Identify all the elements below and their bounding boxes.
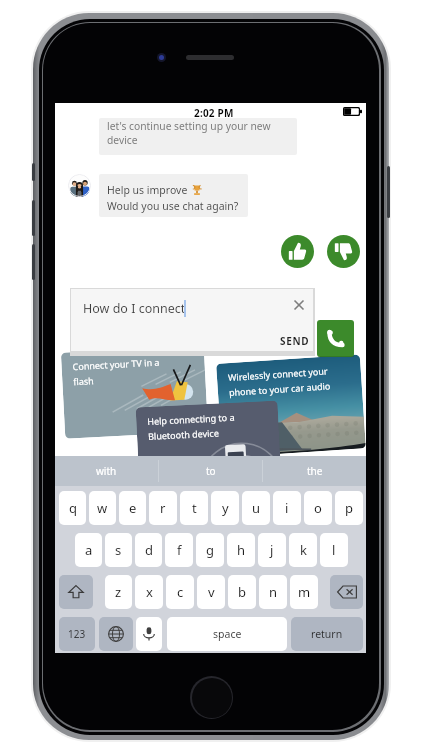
button[interactable]: Wirelessly connect your phone to your ca… xyxy=(216,354,366,458)
button[interactable]: k xyxy=(289,533,317,567)
button[interactable]: u xyxy=(242,491,270,525)
staticText: Help us improve xyxy=(107,183,188,197)
button[interactable]: e xyxy=(119,491,146,525)
button[interactable]: to xyxy=(159,456,262,486)
staticText: y xyxy=(222,499,229,517)
staticText: 123 xyxy=(68,627,86,641)
button[interactable]: p xyxy=(335,491,363,525)
staticText: Would you use chat again? xyxy=(107,199,239,213)
staticText: t xyxy=(192,499,197,517)
button[interactable]: t xyxy=(180,491,208,525)
button[interactable]: r xyxy=(149,491,177,525)
staticText: Help connecting to a Bluetooth device xyxy=(147,411,236,442)
button[interactable]: Switch language xyxy=(99,617,133,651)
staticText: q xyxy=(69,499,77,517)
button[interactable]: return xyxy=(291,617,363,651)
button[interactable]: w xyxy=(89,491,116,525)
staticText: h xyxy=(237,541,246,559)
staticText: i xyxy=(285,499,289,517)
button[interactable]: d xyxy=(135,533,162,567)
button[interactable]: c xyxy=(166,575,194,609)
button[interactable]: x xyxy=(135,575,163,609)
button[interactable]: 123 xyxy=(59,617,95,651)
staticText: 2:02 PM xyxy=(194,106,234,120)
staticText: u xyxy=(252,499,261,517)
button[interactable]: let's continue setting up your new devic… xyxy=(99,118,297,155)
staticText: w xyxy=(97,499,108,517)
staticText: the xyxy=(307,464,323,478)
staticText: b xyxy=(238,583,246,601)
staticText: Connect your TV in a flash xyxy=(72,356,161,387)
staticText: z xyxy=(115,583,122,601)
staticText: x xyxy=(146,583,153,601)
staticText: s xyxy=(115,541,122,559)
button[interactable]: h xyxy=(227,533,255,567)
staticText: r xyxy=(160,499,166,517)
button[interactable]: Call xyxy=(317,320,354,357)
button[interactable]: y xyxy=(211,491,239,525)
staticText: Wirelessly connect your phone to your ca… xyxy=(227,364,331,398)
staticText: j xyxy=(270,541,274,559)
staticText: m xyxy=(298,583,311,601)
button[interactable]: space xyxy=(167,617,287,651)
button[interactable]: q xyxy=(59,491,86,525)
button[interactable]: g xyxy=(196,533,224,567)
button[interactable]: Close xyxy=(291,297,307,313)
button[interactable]: b xyxy=(228,575,256,609)
button[interactable]: l xyxy=(320,533,348,567)
staticText: let's continue setting up your new devic… xyxy=(107,119,271,147)
staticText: return xyxy=(311,627,343,641)
button[interactable]: Shift xyxy=(59,575,93,609)
staticText: SEND xyxy=(280,334,310,348)
button[interactable]: o xyxy=(304,491,332,525)
button[interactable]: a xyxy=(75,533,102,567)
staticText: o xyxy=(314,499,322,517)
button[interactable]: Thumbs up xyxy=(281,235,314,268)
button[interactable]: Help connecting to a Bluetooth device xyxy=(136,400,280,467)
staticText: v xyxy=(208,583,215,601)
button[interactable]: j xyxy=(258,533,286,567)
button[interactable]: z xyxy=(105,575,132,609)
button[interactable]: f xyxy=(165,533,193,567)
button[interactable]: m xyxy=(290,575,318,609)
staticText: to xyxy=(206,464,216,478)
staticText: g xyxy=(206,541,214,559)
staticText: f xyxy=(177,541,182,559)
staticText: k xyxy=(300,541,307,559)
button[interactable]: Help us improve xyxy=(99,174,248,217)
staticText: d xyxy=(145,541,153,559)
button[interactable]: the xyxy=(263,456,366,486)
staticText: n xyxy=(269,583,278,601)
staticText: space xyxy=(213,627,242,641)
staticText: e xyxy=(129,499,137,517)
button[interactable]: SEND xyxy=(280,334,310,348)
staticText: p xyxy=(345,499,353,517)
button[interactable]: s xyxy=(105,533,132,567)
staticText: c xyxy=(177,583,184,601)
button[interactable]: Connect your TV in a flash xyxy=(61,345,208,439)
button[interactable]: Dictate xyxy=(136,617,162,651)
button[interactable]: Backspace xyxy=(330,575,363,609)
button[interactable]: with xyxy=(55,456,158,486)
staticText: a xyxy=(85,541,93,559)
staticText: l xyxy=(332,541,336,559)
staticText: with xyxy=(96,464,117,478)
button[interactable]: n xyxy=(259,575,287,609)
button[interactable]: Thumbs down xyxy=(327,235,360,268)
staticText: How do I connect xyxy=(83,300,186,317)
button[interactable]: v xyxy=(197,575,225,609)
button[interactable]: i xyxy=(273,491,301,525)
